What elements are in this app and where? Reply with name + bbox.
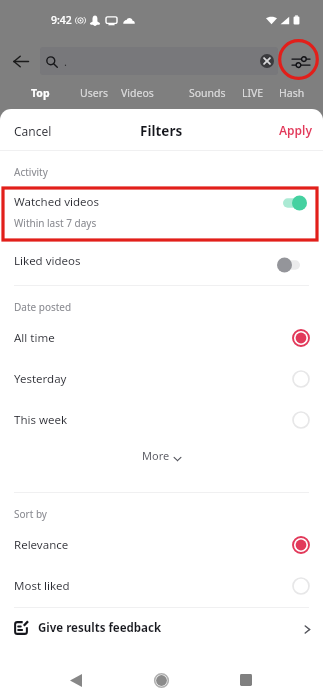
staticText: Sort by [14,507,47,521]
staticText: Filters [140,122,183,140]
staticText: Yesterday [14,371,67,387]
button[interactable]: Relevance [0,530,323,560]
button[interactable]: Cancel [6,116,60,146]
button[interactable]: Videos [121,86,154,100]
button[interactable]: Back [8,47,34,75]
button[interactable]: Apply [271,115,321,145]
button[interactable]: Most liked [0,571,323,601]
staticText: Cancel [14,123,52,139]
button[interactable]: Users [80,86,108,100]
button[interactable]: This week [0,405,323,435]
button[interactable]: Give results feedback [0,608,323,648]
button[interactable]: Yesterday [0,364,323,394]
button[interactable]: Filters [288,49,314,75]
button[interactable]: More [132,443,192,468]
button[interactable]: Back [58,662,94,698]
staticText: All time [14,330,55,346]
button[interactable]: Hash [279,86,305,100]
staticText: Hash [279,86,305,100]
button[interactable]: . [40,47,278,75]
staticText: Sounds [189,86,226,100]
button[interactable]: Clear search [260,54,274,68]
staticText: Activity [14,165,48,179]
staticText: Users [80,86,108,100]
staticText: 9:42 [51,13,72,27]
staticText: Give results feedback [38,620,162,636]
staticText: This week [14,412,68,428]
staticText: Top [31,86,50,100]
staticText: More [142,448,170,463]
staticText: Liked videos [14,253,81,269]
staticText: Apply [279,122,313,138]
button[interactable]: Liked videos [0,241,323,281]
button[interactable]: Recents [228,662,264,698]
button[interactable]: Sounds [189,86,226,100]
staticText: . [64,54,67,69]
button[interactable]: Top [31,86,50,100]
staticText: LIVE [242,86,264,100]
button[interactable]: All time [0,323,323,353]
staticText: Date posted [14,300,72,314]
staticText: Videos [121,86,154,100]
button[interactable]: Watched videos [0,188,323,240]
button[interactable]: LIVE [242,86,264,100]
button[interactable]: Home [143,662,179,698]
staticText: Within last 7 days [14,216,97,230]
staticText: Most liked [14,578,70,594]
staticText: Relevance [14,537,69,553]
staticText: Watched videos [14,194,100,210]
